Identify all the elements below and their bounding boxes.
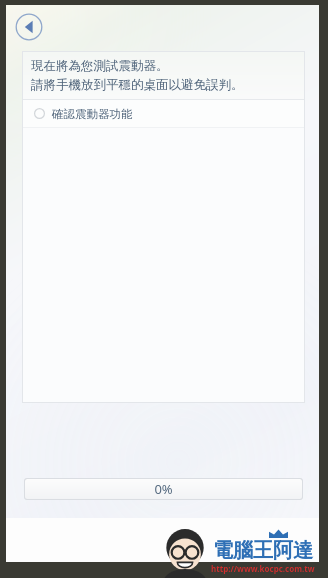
button[interactable]: Back [15, 13, 43, 41]
button[interactable]: 0% [25, 479, 302, 499]
staticText: 現在將為您測試震動器。 [31, 58, 169, 74]
staticText: 確認震動器功能 [52, 107, 133, 121]
staticText: 請將手機放到平穩的桌面以避免誤判。 [31, 77, 244, 93]
staticText: http://www.kocpc.com.tw [211, 563, 315, 574]
staticText: 電腦王阿達 [213, 538, 313, 563]
button[interactable]: 確認震動器功能 [23, 100, 304, 127]
staticText: 0% [154, 480, 173, 498]
